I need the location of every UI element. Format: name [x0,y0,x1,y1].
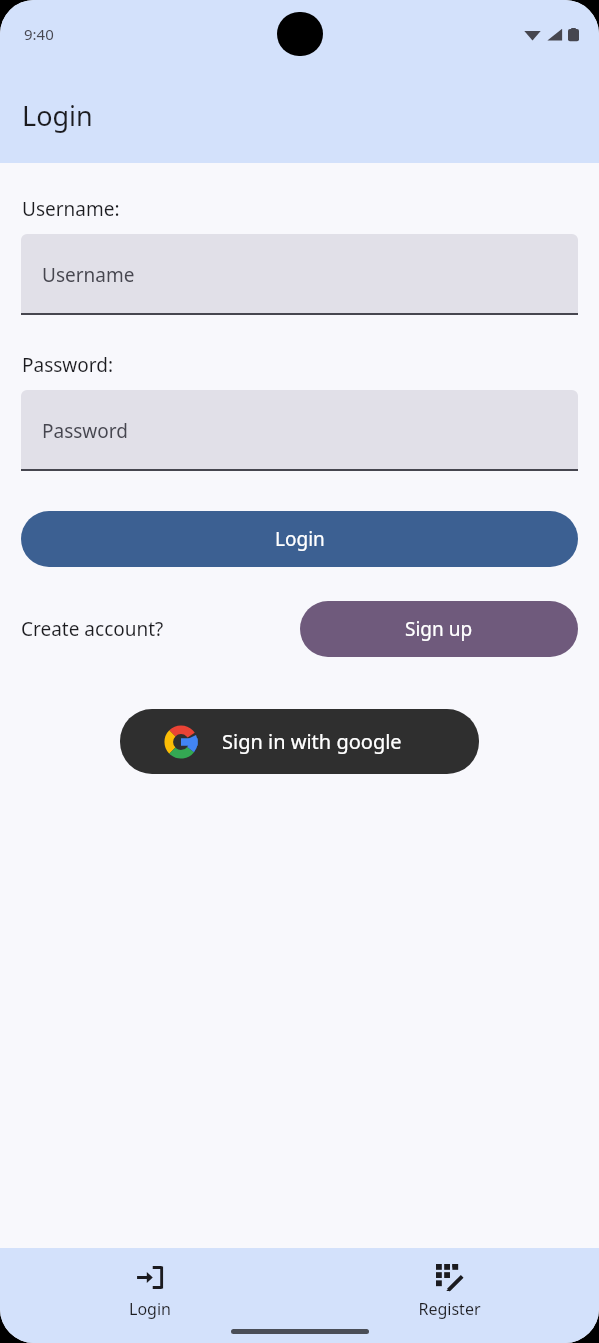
staticText: Register [418,1298,481,1320]
staticText: Username [42,262,135,288]
staticText: Sign in with google [222,728,402,755]
button[interactable]: Login [21,511,578,567]
staticText: Login [129,1298,171,1320]
staticText: Login [22,97,93,134]
button[interactable]: Username [21,234,578,315]
staticText: Password [42,418,128,444]
button[interactable]: Login [0,1248,299,1320]
staticText: Create account? [21,616,164,642]
staticText: Password: [22,352,114,378]
button[interactable]: Sign up [300,601,578,657]
button[interactable]: Sign in with google [120,709,479,774]
button[interactable]: Register [299,1248,599,1320]
staticText: Sign up [405,616,473,642]
staticText: Login [275,526,325,552]
button[interactable]: Password [21,390,578,471]
staticText: Username: [22,196,120,222]
staticText: 9:40 [24,24,54,44]
